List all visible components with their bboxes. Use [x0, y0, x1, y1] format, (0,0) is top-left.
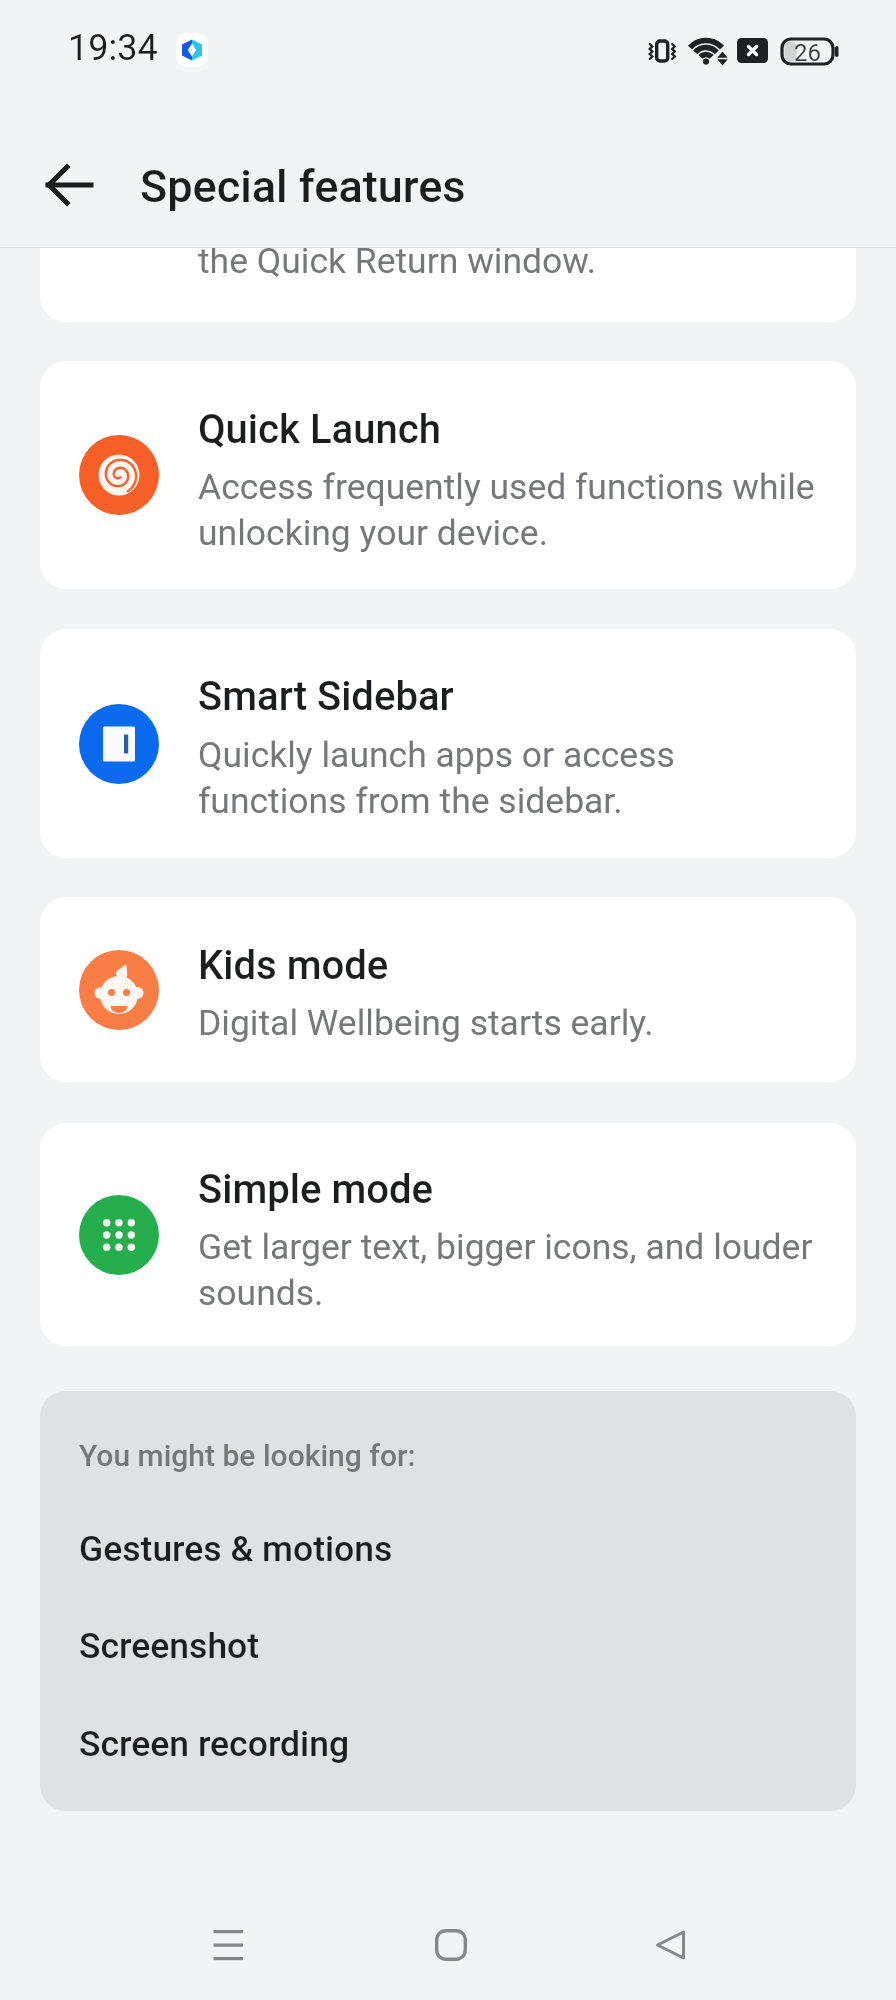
staticText: Quick Launch	[198, 406, 441, 453]
button[interactable]: Screen recording	[40, 1708, 856, 1780]
staticText: 19:34	[68, 27, 158, 69]
button[interactable]: the Quick Return window.	[40, 248, 856, 322]
staticText: Screenshot	[79, 1625, 260, 1667]
button[interactable]: Gestures & motions	[40, 1513, 856, 1585]
button[interactable]: Back	[29, 146, 107, 224]
button[interactable]: Home	[391, 1909, 511, 1981]
button[interactable]: Quick Launch	[40, 361, 856, 589]
staticText: Quickly launch apps or access functions …	[198, 734, 675, 822]
staticText: Gestures & motions	[79, 1528, 393, 1570]
button[interactable]: Kids mode	[40, 897, 856, 1082]
button[interactable]: Back	[611, 1909, 731, 1981]
staticText: Access frequently used functions while u…	[198, 466, 815, 554]
staticText: Kids mode	[198, 942, 389, 989]
staticText: Digital Wellbeing starts early.	[198, 1002, 654, 1044]
button[interactable]: Simple mode	[40, 1123, 856, 1346]
staticText: Simple mode	[198, 1166, 434, 1213]
staticText: Smart Sidebar	[198, 673, 454, 720]
staticText: the Quick Return window.	[198, 248, 597, 282]
staticText: You might be looking for:	[79, 1438, 416, 1473]
staticText: 26	[794, 39, 821, 64]
button[interactable]: Smart Sidebar	[40, 629, 856, 858]
staticText: Get larger text, bigger icons, and loude…	[198, 1226, 813, 1314]
staticText: Screen recording	[79, 1723, 350, 1765]
staticText: Special features	[140, 160, 466, 213]
button[interactable]: Recent apps	[168, 1909, 288, 1981]
button[interactable]: Screenshot	[40, 1610, 856, 1682]
